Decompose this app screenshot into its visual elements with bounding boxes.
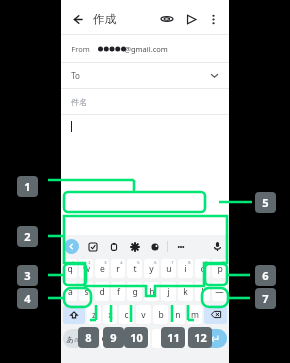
- button[interactable]: b: [153, 305, 168, 324]
- button[interactable]: Send: [181, 9, 201, 29]
- button[interactable]: w: [79, 259, 93, 278]
- staticText: o: [200, 263, 206, 275]
- staticText: 8: [188, 260, 191, 265]
- staticText: e: [100, 263, 105, 275]
- button[interactable]: f: [111, 282, 125, 301]
- staticText: s: [84, 286, 89, 298]
- staticText: 件名: [71, 97, 87, 107]
- button[interactable]: l: [195, 282, 210, 301]
- staticText: 3: [104, 260, 107, 265]
- staticText: x: [108, 309, 113, 321]
- staticText: p: [217, 263, 223, 275]
- button[interactable]: j: [161, 282, 176, 301]
- staticText: あ: [66, 335, 74, 344]
- button[interactable]: r: [111, 259, 125, 278]
- button[interactable]: Enter: [202, 329, 227, 348]
- button[interactable]: Clipboard: [106, 239, 121, 254]
- button[interactable]: —: [212, 282, 227, 301]
- button[interactable]: Move cursor left: [176, 329, 187, 348]
- button[interactable]: x: [103, 305, 117, 324]
- staticText: f: [117, 286, 120, 298]
- button[interactable]: Stickers: [85, 239, 100, 254]
- button[interactable]: Shift: [63, 305, 85, 324]
- staticText: 作成: [93, 12, 116, 26]
- button[interactable]: s: [79, 282, 93, 301]
- button[interactable]: k: [178, 282, 193, 301]
- button[interactable]: Theme: [147, 239, 162, 254]
- staticText: 11: [167, 330, 180, 345]
- staticText: 日本語: [122, 335, 142, 343]
- button[interactable]: m: [187, 305, 202, 324]
- staticText: 12: [194, 330, 207, 345]
- button[interactable]: y: [144, 259, 159, 278]
- button[interactable]: n: [170, 305, 185, 324]
- staticText: 9: [205, 260, 208, 265]
- button[interactable]: q: [63, 259, 77, 278]
- staticText: 5: [262, 195, 269, 210]
- button[interactable]: Space: [152, 329, 174, 348]
- staticText: v: [141, 309, 146, 321]
- staticText: y: [149, 263, 154, 275]
- staticText: w: [83, 263, 90, 275]
- button[interactable]: Expand toolbar: [64, 239, 79, 254]
- button[interactable]: v: [136, 305, 151, 324]
- button[interactable]: Back: [67, 9, 87, 29]
- button[interactable]: 、: [87, 328, 98, 348]
- staticText: t: [133, 263, 137, 275]
- staticText: u: [166, 263, 172, 275]
- staticText: @gmail.com: [124, 44, 168, 54]
- staticText: 10: [130, 330, 143, 345]
- staticText: 7: [171, 260, 174, 265]
- button[interactable]: Emoji: [100, 329, 111, 348]
- button[interactable]: a: [63, 282, 77, 301]
- button[interactable]: e: [95, 259, 109, 278]
- button[interactable]: h: [144, 282, 159, 301]
- button[interactable]: Move cursor right: [189, 329, 200, 348]
- button[interactable]: Voice input: [209, 238, 226, 255]
- staticText: 3: [24, 268, 31, 283]
- button[interactable]: Switch language: [63, 329, 85, 348]
- staticText: 、: [89, 334, 96, 342]
- staticText: 6: [154, 260, 157, 265]
- staticText: l: [201, 286, 204, 298]
- button[interactable]: g: [127, 282, 142, 301]
- staticText: 1: [24, 179, 31, 194]
- staticText: h: [149, 286, 155, 298]
- staticText: 4: [120, 260, 123, 265]
- button[interactable]: t: [127, 259, 142, 278]
- staticText: 8: [85, 330, 92, 345]
- staticText: To: [71, 70, 80, 81]
- staticText: From: [71, 44, 90, 54]
- staticText: 0: [222, 260, 225, 265]
- button[interactable]: p: [212, 259, 227, 278]
- staticText: m: [191, 309, 199, 321]
- staticText: g: [132, 286, 138, 298]
- staticText: 1: [72, 260, 75, 265]
- staticText: 5: [137, 260, 140, 265]
- button[interactable]: More: [173, 239, 188, 254]
- button[interactable]: c: [119, 305, 134, 324]
- staticText: n: [175, 309, 181, 321]
- button[interactable]: Settings: [127, 239, 142, 254]
- button[interactable]: z: [87, 305, 101, 324]
- button[interactable]: To: [71, 63, 219, 88]
- staticText: q: [67, 263, 73, 275]
- staticText: j: [167, 286, 170, 298]
- button[interactable]: More options: [203, 9, 223, 29]
- button[interactable]: o: [195, 259, 210, 278]
- staticText: b: [158, 309, 164, 321]
- staticText: d: [99, 286, 105, 298]
- staticText: 2: [88, 260, 91, 265]
- button[interactable]: Backspace: [204, 305, 227, 324]
- button[interactable]: u: [161, 259, 176, 278]
- staticText: —: [215, 286, 224, 298]
- button[interactable]: 日本語: [113, 329, 150, 348]
- staticText: i: [184, 263, 187, 275]
- staticText: 9: [110, 330, 117, 345]
- staticText: z: [92, 309, 96, 321]
- button[interactable]: i: [178, 259, 193, 278]
- button[interactable]: Attach: [157, 9, 177, 29]
- staticText: c: [124, 309, 129, 321]
- staticText: 2: [24, 229, 31, 244]
- button[interactable]: d: [95, 282, 109, 301]
